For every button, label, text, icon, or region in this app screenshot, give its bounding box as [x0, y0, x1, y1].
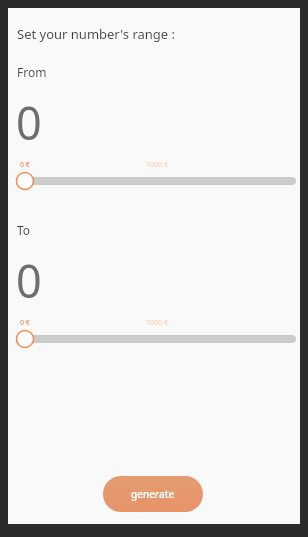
button[interactable]: generate: [103, 476, 203, 512]
staticText: generate: [131, 487, 175, 501]
staticText: From: [17, 64, 47, 80]
staticText: Set your number's range :: [17, 25, 176, 43]
staticText: 1000 €: [11, 318, 303, 328]
staticText: 0: [16, 250, 42, 311]
staticText: 0: [16, 92, 42, 153]
staticText: 0 €: [20, 318, 30, 328]
button[interactable]: To value slider: [8, 329, 300, 349]
staticText: 0 €: [20, 160, 30, 170]
staticText: To: [17, 222, 31, 238]
button[interactable]: From value slider: [8, 171, 300, 191]
staticText: 1000 €: [11, 160, 303, 170]
